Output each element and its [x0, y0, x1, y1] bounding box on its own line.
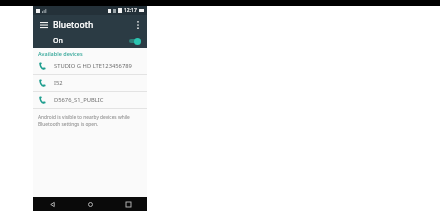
- staticText: I52: [54, 79, 63, 87]
- button[interactable]: Phone device: [33, 92, 147, 108]
- other: Phone device: [39, 79, 47, 87]
- button[interactable]: Phone device: [33, 58, 147, 74]
- staticText: 12:17: [124, 7, 137, 14]
- button[interactable]: More options: [132, 19, 143, 30]
- staticText: Available devices: [38, 50, 83, 57]
- button[interactable]: Phone device: [33, 75, 147, 91]
- button[interactable]: Recent apps: [109, 197, 147, 211]
- staticText: On: [53, 36, 63, 46]
- staticText: D5676_S1_PUBLIC: [54, 96, 104, 104]
- other: Phone device: [39, 96, 47, 104]
- button[interactable]: On: [33, 34, 147, 48]
- staticText: Android is visible to nearby devices whi…: [38, 114, 142, 128]
- button[interactable]: Open navigation menu: [38, 19, 49, 30]
- other: Phone device: [39, 62, 47, 70]
- button[interactable]: Home: [71, 197, 109, 211]
- staticText: Bluetooth: [53, 19, 94, 31]
- button[interactable]: Back: [33, 197, 71, 211]
- staticText: STUDIO G HD LTE123456789: [54, 62, 132, 70]
